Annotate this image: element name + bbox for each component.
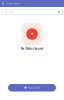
staticText: Order History — [6, 2, 20, 5]
staticText: No Order Found — [20, 47, 43, 51]
button[interactable]: Place Order — [8, 84, 56, 91]
button[interactable]: Search Here — [1, 9, 62, 15]
staticText: Search Here — [3, 11, 13, 13]
button[interactable]: Back — [1, 0, 5, 7]
staticText: Place Order — [28, 86, 40, 89]
